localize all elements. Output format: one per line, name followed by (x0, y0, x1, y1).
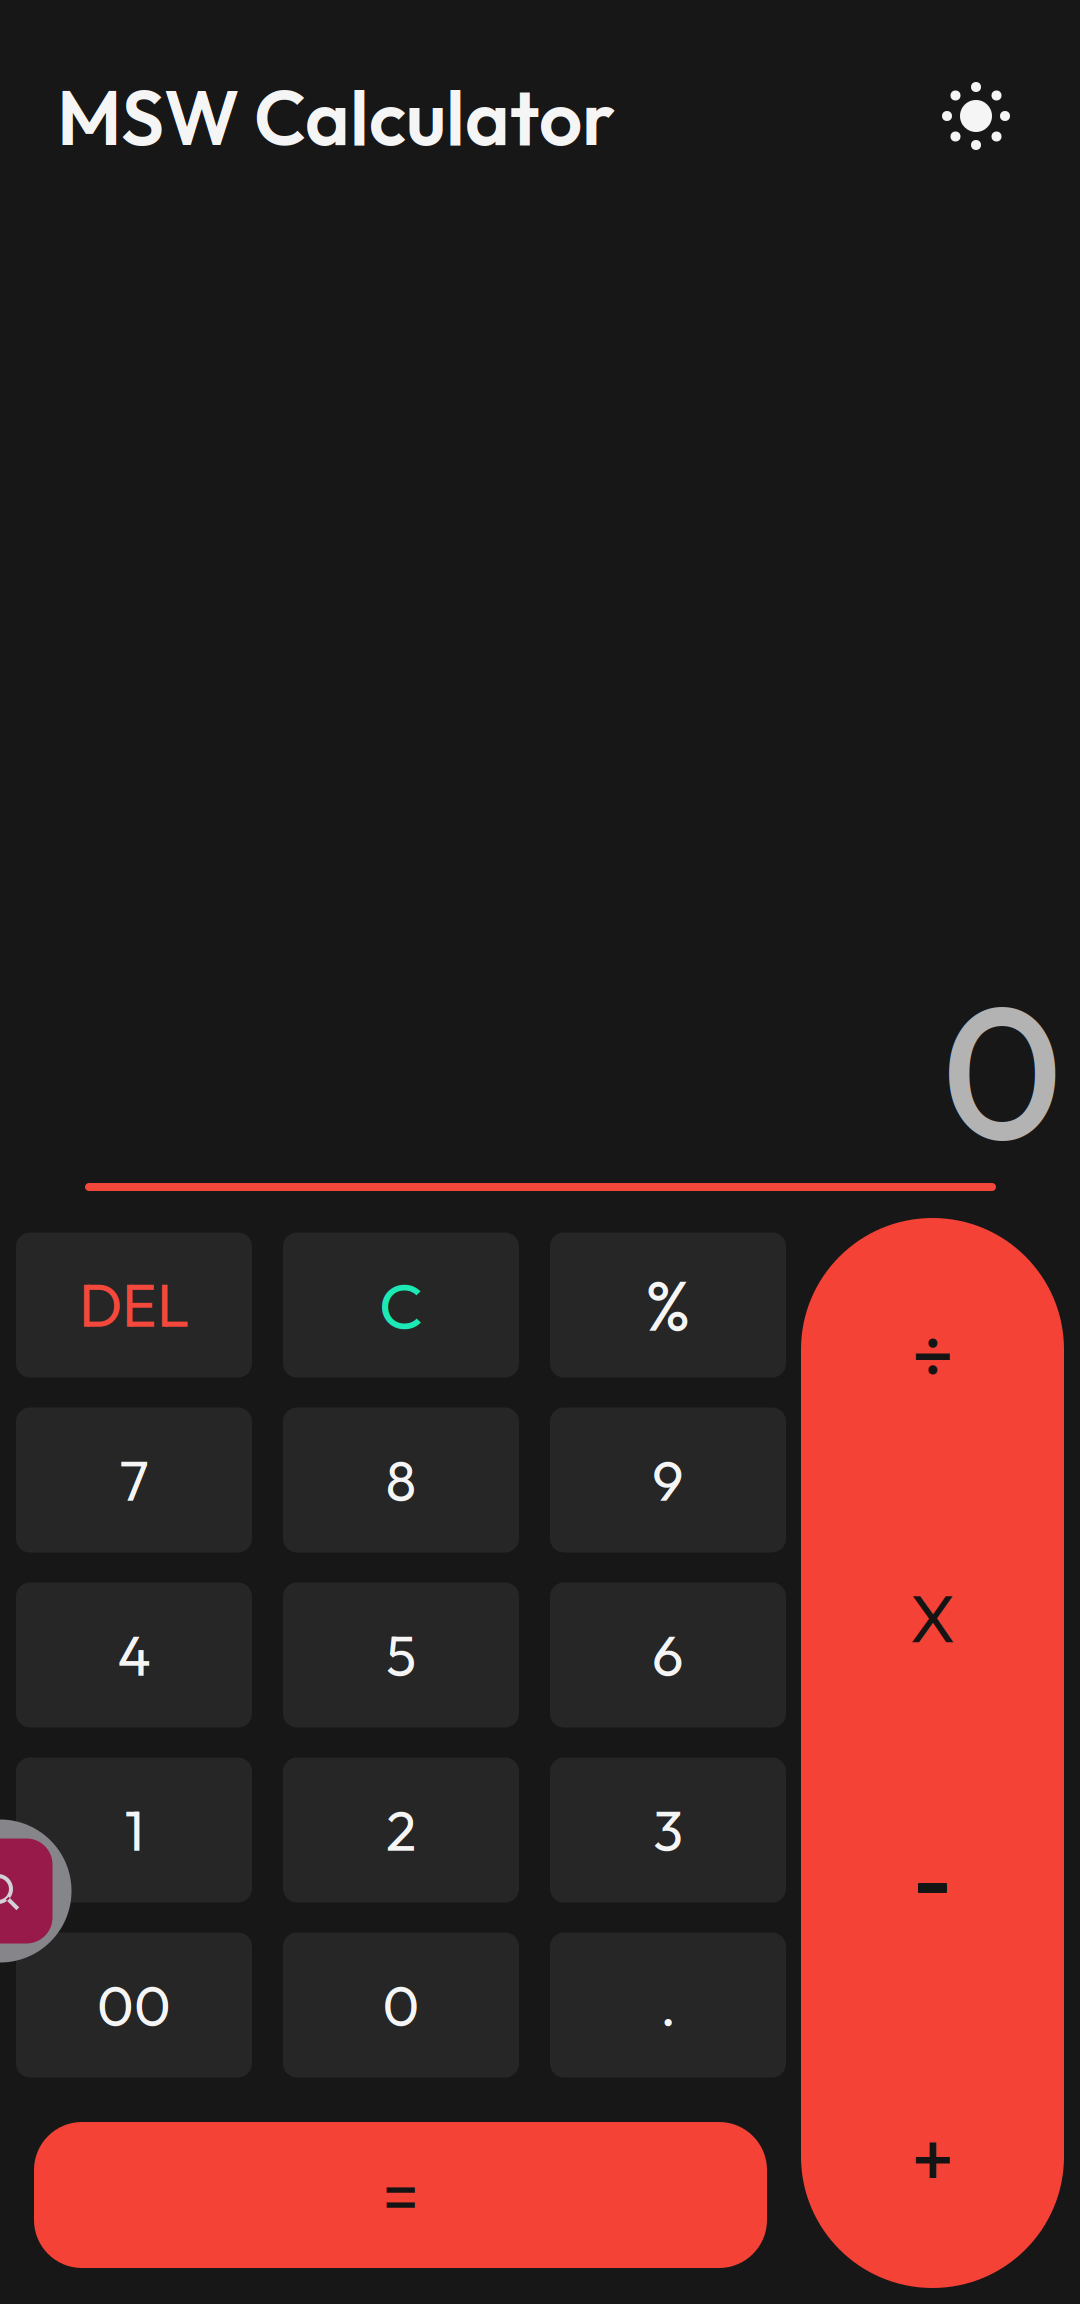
staticText: + (911, 2108, 954, 2208)
button[interactable]: DEL (16, 1232, 252, 1377)
button[interactable]: Subtract (801, 1754, 1064, 2021)
staticText: 8 (385, 1445, 416, 1515)
button[interactable]: 8 (283, 1407, 519, 1552)
button[interactable]: = (34, 2122, 767, 2268)
button[interactable]: Multiply (801, 1484, 1064, 1751)
button[interactable]: 9 (550, 1407, 786, 1552)
button[interactable]: Search (0, 1819, 71, 1962)
button[interactable]: 7 (16, 1407, 252, 1552)
staticText: 4 (117, 1620, 150, 1690)
staticText: 3 (653, 1795, 683, 1865)
staticText: C (379, 1265, 423, 1345)
staticText: 5 (386, 1620, 416, 1690)
button[interactable]: % (550, 1232, 786, 1377)
button[interactable]: 1 (16, 1757, 252, 1902)
staticText: 0 (941, 952, 1063, 1188)
staticText: 00 (97, 1970, 171, 2040)
staticText: % (645, 1261, 691, 1349)
button[interactable]: Divide (801, 1220, 1064, 1487)
button[interactable]: 3 (550, 1757, 786, 1902)
button[interactable]: 4 (16, 1582, 252, 1727)
staticText: 6 (652, 1620, 684, 1690)
button[interactable]: Add (801, 2024, 1064, 2291)
button[interactable]: Toggle theme (942, 82, 1010, 150)
button[interactable]: 6 (550, 1582, 786, 1727)
staticText: MSW Calculator (57, 69, 615, 165)
button[interactable]: 00 (16, 1932, 252, 2077)
button[interactable]: 5 (283, 1582, 519, 1727)
button[interactable]: C (283, 1232, 519, 1377)
staticText: 1 (124, 1795, 143, 1865)
staticText: 9 (652, 1445, 684, 1515)
staticText: 2 (386, 1795, 416, 1865)
staticText: . (660, 1970, 676, 2040)
button[interactable]: 2 (283, 1757, 519, 1902)
staticText: 7 (119, 1445, 148, 1515)
staticText: = (382, 2153, 418, 2237)
staticText: X (910, 1577, 955, 1659)
button[interactable]: . (550, 1932, 786, 2077)
button[interactable]: 0 (283, 1932, 519, 2077)
staticText: 0 (382, 1970, 419, 2040)
staticText: ÷ (911, 1304, 954, 1404)
staticText: DEL (79, 1268, 189, 1342)
